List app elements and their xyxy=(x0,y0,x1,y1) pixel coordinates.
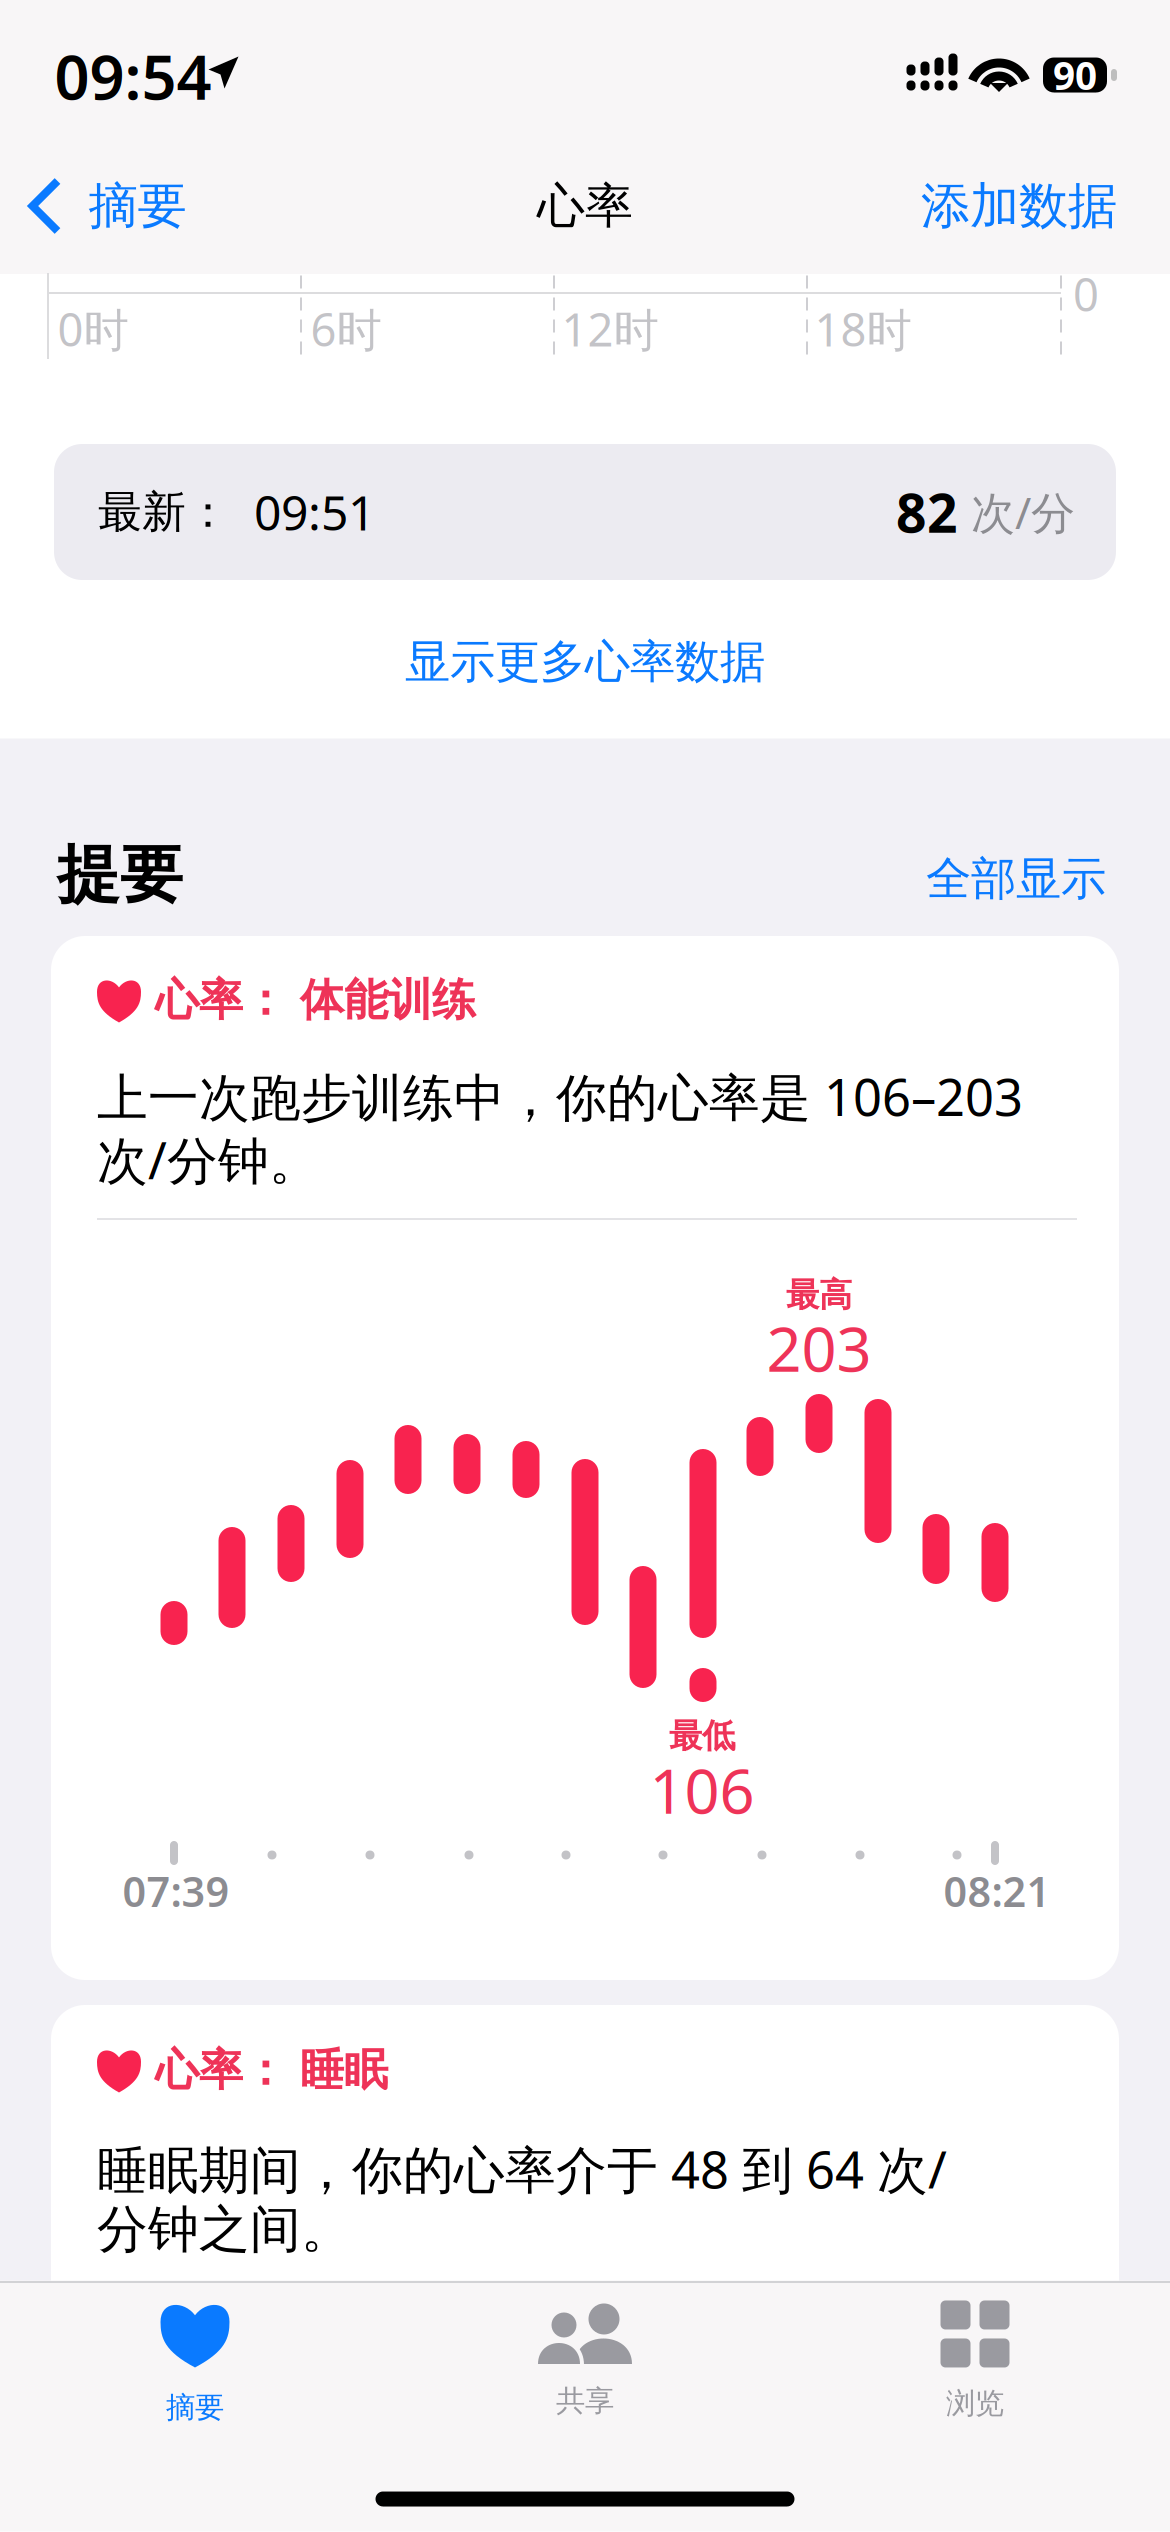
staticText: 0时 xyxy=(57,299,128,359)
staticText: 09:54 xyxy=(54,35,211,117)
staticText: 浏览 xyxy=(946,2385,1004,2421)
staticText: 全部显示 xyxy=(926,851,1106,907)
staticText: 203 xyxy=(766,1307,871,1389)
staticText: 82 xyxy=(896,477,958,547)
staticText: 显示更多心率数据 xyxy=(405,634,765,690)
staticText: 上一次跑步训练中，你的心率是 106–203 xyxy=(97,1063,1023,1130)
staticText: 6时 xyxy=(310,299,381,359)
button[interactable]: 浏览 xyxy=(855,2286,1095,2436)
staticText: 12时 xyxy=(561,299,658,359)
staticText: 次/分 xyxy=(958,483,1075,541)
staticText: 心率： 睡眠 xyxy=(155,2043,388,2097)
staticText: 08:21 xyxy=(943,1864,1050,1918)
staticText: 最新： xyxy=(98,485,230,539)
button[interactable]: 摘要 xyxy=(75,2288,315,2438)
staticText: 心率 xyxy=(537,176,633,235)
staticText: 心率： 体能训练 xyxy=(155,973,476,1027)
staticText: 摘要 xyxy=(88,176,186,236)
staticText: 18时 xyxy=(814,299,911,359)
button[interactable]: 全部显示 xyxy=(912,837,1120,921)
button[interactable]: 显示更多心率数据 xyxy=(375,610,795,714)
staticText: 提要 xyxy=(57,836,183,913)
staticText: 摘要 xyxy=(166,2389,224,2425)
staticText: 0 xyxy=(1073,264,1099,324)
staticText: 90 xyxy=(1053,49,1097,101)
staticText: 106 xyxy=(649,1749,754,1831)
staticText: 07:39 xyxy=(122,1864,229,1918)
staticText: 分钟之间。 xyxy=(97,2198,352,2261)
button[interactable]: 共享 xyxy=(465,2286,705,2436)
button[interactable]: 添加数据 xyxy=(907,158,1131,254)
staticText: 最高 xyxy=(786,1274,852,1315)
staticText: 睡眠期间，你的心率介于 48 到 64 次/ xyxy=(97,2135,947,2202)
staticText: 次/分钟。 xyxy=(97,1126,320,1193)
staticText: 共享 xyxy=(556,2383,614,2419)
staticText: 添加数据 xyxy=(921,176,1117,236)
staticText: 09:51 xyxy=(230,480,375,544)
staticText: 最低 xyxy=(669,1715,735,1756)
button[interactable]: 摘要 xyxy=(17,158,196,254)
